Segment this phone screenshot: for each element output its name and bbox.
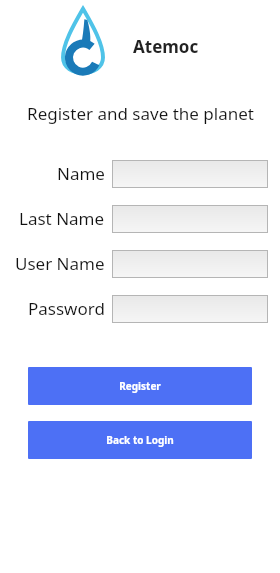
staticText: Password — [28, 297, 105, 320]
staticText: Last Name — [19, 207, 105, 230]
button[interactable]: Name input field — [112, 160, 268, 188]
button[interactable]: Last Name input field — [112, 205, 268, 233]
staticText: User Name — [15, 252, 105, 275]
staticText: Register and save the planet — [27, 102, 254, 125]
staticText: Atemoc — [133, 35, 199, 58]
staticText: Name — [57, 162, 105, 185]
button[interactable]: Register — [28, 367, 252, 405]
button[interactable]: Back to Login — [28, 421, 252, 459]
other: Atemoc water drop logo — [60, 6, 106, 86]
staticText: Back to Login — [106, 433, 174, 447]
staticText: Register — [119, 379, 161, 393]
button[interactable]: Password input field — [112, 295, 268, 323]
button[interactable]: User Name input field — [112, 250, 268, 278]
